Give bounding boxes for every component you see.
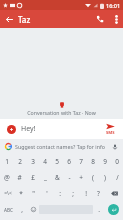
staticText: ) (104, 173, 106, 182)
staticText: £ (31, 173, 35, 182)
staticText: 2 (18, 157, 22, 166)
staticText: @ (4, 173, 10, 182)
staticText: # (17, 173, 22, 182)
button[interactable]: : (53, 185, 66, 201)
staticText: Hey! (21, 124, 101, 134)
button[interactable]: Back (0, 10, 18, 28)
button[interactable]: + (75, 169, 87, 185)
button[interactable]: ! (79, 185, 92, 201)
button[interactable]: More symbols (0, 185, 15, 201)
button[interactable]: 9 (99, 153, 111, 169)
staticText: ' (46, 189, 48, 198)
staticText: / (116, 173, 119, 182)
staticText: Taz (18, 14, 91, 25)
button[interactable]: - (63, 169, 75, 185)
staticText: _ (44, 173, 47, 182)
button[interactable]: Google (4, 142, 12, 150)
button[interactable]: 7 (75, 153, 87, 169)
button[interactable]: 4 (39, 153, 51, 169)
button[interactable]: Emoji (27, 201, 39, 218)
button[interactable]: # (13, 169, 26, 185)
button[interactable]: / (111, 169, 123, 185)
button[interactable]: Suggest contact names? Tap for info (15, 143, 110, 150)
button[interactable]: ' (40, 185, 53, 201)
button[interactable]: " (27, 185, 40, 201)
staticText: - (68, 173, 71, 182)
staticText: " (32, 189, 35, 198)
button[interactable]: 8 (87, 153, 99, 169)
button[interactable]: 6 (63, 153, 75, 169)
staticText: =\< (4, 190, 12, 197)
staticText: ; (72, 189, 74, 198)
button[interactable]: ? (92, 185, 105, 201)
button[interactable]: & (51, 169, 63, 185)
button[interactable]: _ (39, 169, 51, 185)
staticText: ! (85, 189, 87, 198)
staticText: * (19, 189, 23, 198)
staticText: 16:01 (106, 2, 121, 9)
staticText: ? (97, 189, 100, 198)
button[interactable]: 0 (111, 153, 123, 169)
button[interactable]: . (93, 201, 104, 218)
button[interactable]: Call (91, 10, 109, 28)
button[interactable]: Send SMS (101, 119, 119, 139)
button[interactable]: , (17, 201, 27, 218)
staticText: : (59, 189, 61, 198)
staticText: 9 (103, 157, 107, 166)
button[interactable]: £ (26, 169, 39, 185)
button[interactable]: ( (87, 169, 99, 185)
staticText: Conversation with Taz · Now (27, 109, 96, 116)
button[interactable]: @ (0, 169, 13, 185)
button[interactable]: 3 (26, 153, 39, 169)
staticText: 3 (31, 157, 35, 166)
staticText: , (21, 205, 23, 214)
staticText: 4 (43, 157, 47, 166)
staticText: 8 (91, 157, 95, 166)
staticText: 6 (67, 157, 71, 166)
staticText: SMS (106, 130, 115, 136)
button[interactable]: Attach (4, 122, 18, 136)
staticText: 7 (79, 157, 83, 166)
staticText: 5 (55, 157, 59, 166)
button[interactable]: More options (109, 12, 123, 26)
staticText: & (55, 173, 60, 182)
staticText: ( (92, 173, 94, 182)
staticText: 1 (5, 157, 9, 166)
button[interactable]: * (15, 185, 27, 201)
staticText: ABC (4, 207, 13, 213)
button[interactable]: Enter (104, 201, 123, 218)
button[interactable]: ABC (0, 201, 17, 218)
button[interactable]: 2 (13, 153, 26, 169)
button[interactable]: ; (66, 185, 79, 201)
button[interactable]: Backspace (105, 185, 123, 201)
button[interactable]: ) (99, 169, 111, 185)
staticText: . (98, 205, 100, 214)
button[interactable]: 1 (0, 153, 13, 169)
staticText: 0 (115, 157, 119, 166)
staticText: + (79, 173, 83, 182)
button[interactable]: 5 (51, 153, 63, 169)
button[interactable]: Voice input (110, 142, 119, 151)
